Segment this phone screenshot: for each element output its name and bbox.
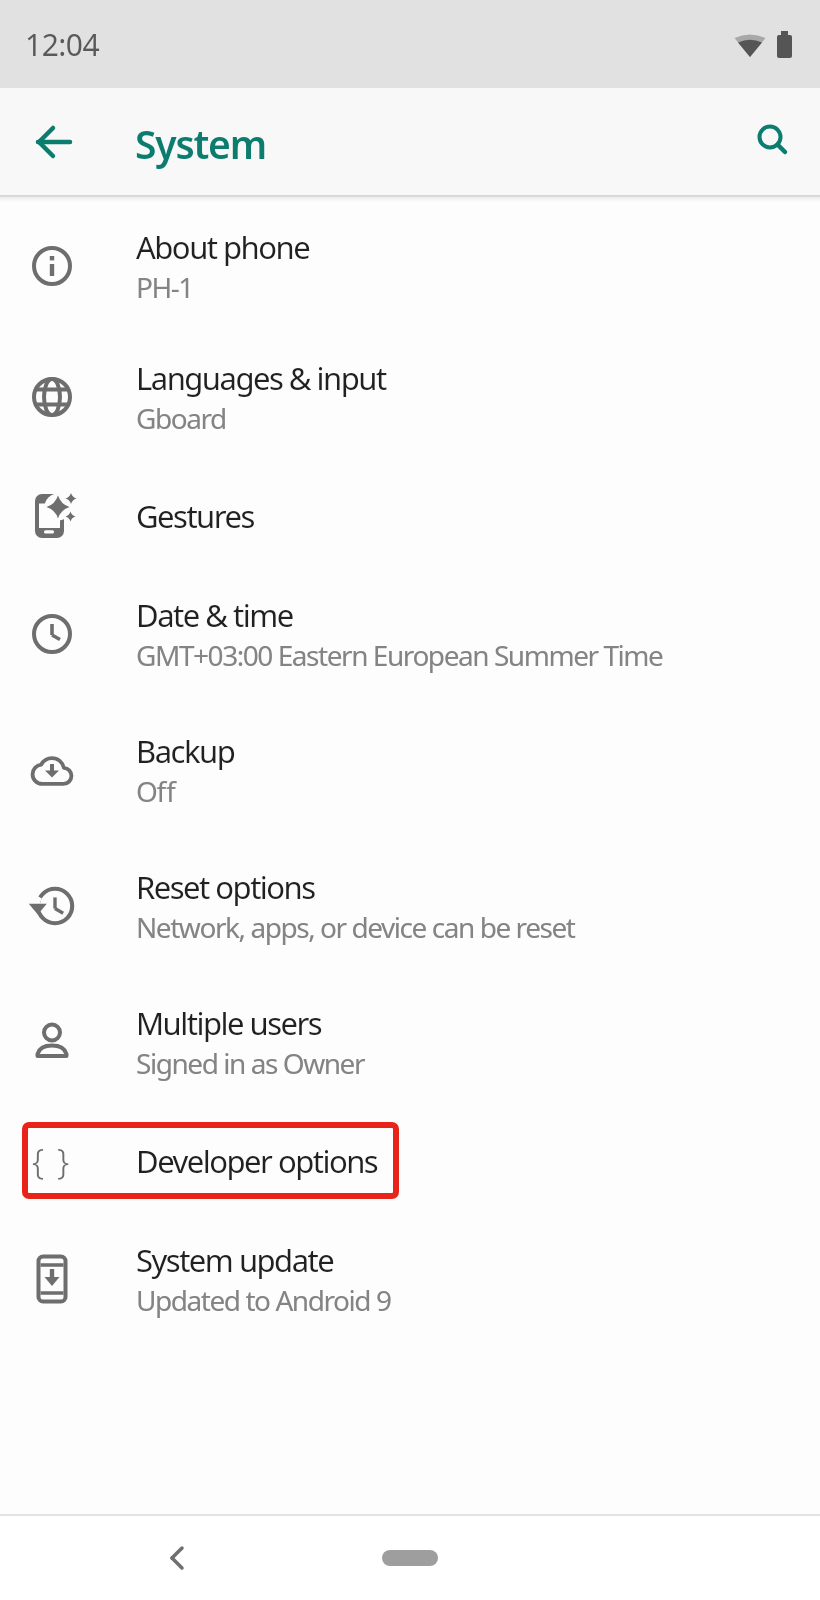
button[interactable] xyxy=(382,1550,438,1566)
staticText: Signed in as Owner xyxy=(136,1044,365,1082)
staticText: Languages & input xyxy=(136,357,386,399)
button[interactable]: Backup xyxy=(0,702,820,838)
button[interactable] xyxy=(0,88,108,195)
staticText: System update xyxy=(136,1239,334,1281)
button[interactable]: { } xyxy=(0,1110,820,1211)
staticText: Updated to Android 9 xyxy=(136,1281,391,1319)
staticText: 12:04 xyxy=(25,24,100,65)
staticText: GMT+03:00 Eastern European Summer Time xyxy=(136,636,663,674)
button[interactable]: About phone xyxy=(0,202,820,329)
button[interactable]: Reset options xyxy=(0,838,820,974)
staticText: Date & time xyxy=(136,594,293,636)
staticText: About phone xyxy=(136,226,310,268)
button[interactable]: System update xyxy=(0,1211,820,1347)
staticText: Network, apps, or device can be reset xyxy=(136,908,575,946)
staticText: Developer options xyxy=(136,1140,378,1182)
staticText: PH-1 xyxy=(136,268,193,306)
staticText: Reset options xyxy=(136,866,315,908)
staticText: Gboard xyxy=(136,399,226,437)
button[interactable] xyxy=(730,88,820,195)
staticText: Backup xyxy=(136,730,235,772)
button[interactable]: Multiple users xyxy=(0,974,820,1110)
staticText: { } xyxy=(32,1138,72,1184)
staticText: Off xyxy=(136,772,175,810)
staticText: Multiple users xyxy=(136,1002,322,1044)
staticText: Gestures xyxy=(136,495,254,537)
button[interactable]: Date & time xyxy=(0,566,820,702)
button[interactable] xyxy=(145,1516,209,1600)
staticText: System xyxy=(135,117,266,170)
button[interactable]: Gestures xyxy=(0,465,820,566)
button[interactable]: Languages & input xyxy=(0,329,820,465)
